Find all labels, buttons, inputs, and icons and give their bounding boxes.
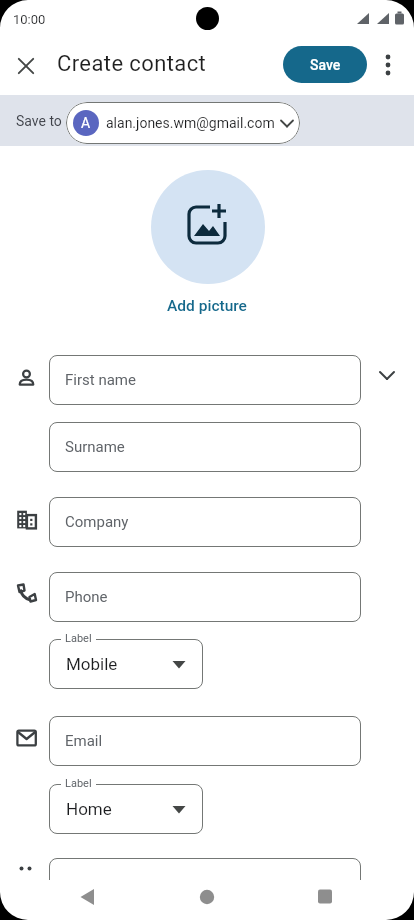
staticText: Save to (16, 113, 62, 129)
button[interactable]: Company (49, 497, 361, 547)
staticText: Email (65, 732, 103, 750)
staticText: Save (310, 57, 341, 73)
button[interactable] (151, 170, 265, 284)
staticText: 10:00 (13, 12, 46, 27)
staticText: Company (65, 513, 129, 531)
button[interactable] (372, 48, 404, 80)
staticText: Create contact (57, 51, 207, 77)
button[interactable]: Add picture (167, 297, 247, 315)
button[interactable]: Mobile (49, 639, 203, 689)
button[interactable] (10, 50, 42, 82)
staticText: Label (65, 777, 92, 790)
staticText: A (81, 115, 91, 131)
button[interactable]: Email (49, 716, 361, 766)
staticText: Label (65, 632, 92, 645)
staticText: First name (65, 371, 136, 389)
staticText: Home (66, 799, 112, 819)
staticText: Phone (65, 588, 108, 606)
button[interactable]: First name (49, 355, 361, 405)
button[interactable]: A (66, 102, 300, 144)
button[interactable]: Home (49, 784, 203, 834)
button[interactable] (63, 880, 111, 920)
staticText: Surname (65, 438, 125, 456)
staticText: Mobile (66, 654, 118, 674)
button[interactable] (49, 858, 361, 898)
button[interactable]: Phone (49, 572, 361, 622)
button[interactable] (301, 880, 349, 920)
button[interactable] (183, 880, 231, 920)
button[interactable]: Surname (49, 422, 361, 472)
button[interactable] (365, 353, 409, 397)
button[interactable]: Save (283, 46, 367, 83)
staticText: alan.jones.wm@gmail.com (106, 115, 275, 131)
